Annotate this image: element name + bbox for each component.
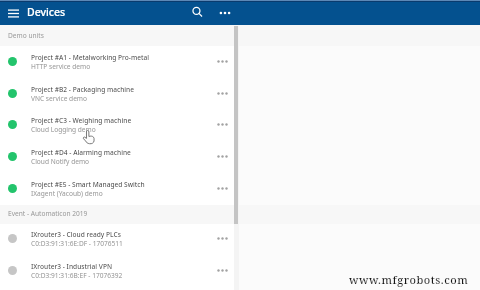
staticText: Cloud Logging demo <box>31 125 96 134</box>
staticText: IXrouter3 - Cloud ready PLCs <box>31 230 121 239</box>
button[interactable]: Project #D4 - Alarming machine <box>0 141 480 173</box>
staticText: Project #D4 - Alarming machine <box>31 148 131 157</box>
button[interactable]: More options <box>212 46 232 78</box>
staticText: Devices <box>27 5 66 19</box>
staticText: HTTP service demo <box>31 62 91 71</box>
button[interactable]: More options <box>212 223 232 255</box>
button[interactable]: Project #A1 - Metalworking Pro-metal <box>0 46 480 78</box>
button[interactable]: More options <box>212 173 232 205</box>
button[interactable]: More options <box>212 109 232 141</box>
staticText: Project #C3 - Weighing machine <box>31 116 132 125</box>
button[interactable]: IXrouter3 - Cloud ready PLCs <box>0 223 480 255</box>
staticText: VNC service demo <box>31 94 88 103</box>
staticText: IXrouter3 - Industrial VPN <box>31 262 113 271</box>
button[interactable]: Open navigation menu <box>3 3 23 23</box>
staticText: Demo units <box>8 31 44 40</box>
staticText: www.mfgrobots.com <box>349 272 469 287</box>
staticText: Project #B2 - Packaging machine <box>31 85 135 94</box>
button[interactable]: Project #E5 - Smart Managed Switch <box>0 173 480 205</box>
staticText: Cloud Notify demo <box>31 157 90 166</box>
button[interactable]: More options <box>212 255 232 287</box>
button[interactable]: Project #B2 - Packaging machine <box>0 78 480 110</box>
staticText: Event - Automaticon 2019 <box>8 209 88 218</box>
button[interactable]: Search <box>186 0 208 25</box>
button[interactable]: More options <box>214 0 236 25</box>
button[interactable]: IXrouter3 - Industrial VPN <box>0 255 480 287</box>
button[interactable]: More options <box>212 141 232 173</box>
button[interactable]: Project #C3 - Weighing machine <box>0 109 480 141</box>
staticText: Project #E5 - Smart Managed Switch <box>31 180 145 189</box>
staticText: C0:D3:91:31:6B:EF - 17076392 <box>31 271 123 280</box>
button[interactable]: More options <box>212 78 232 110</box>
staticText: IXagent (Yacoub) demo <box>31 189 103 198</box>
staticText: Project #A1 - Metalworking Pro-metal <box>31 53 150 62</box>
staticText: C0:D3:91:31:6E:DF - 17076511 <box>31 239 123 248</box>
